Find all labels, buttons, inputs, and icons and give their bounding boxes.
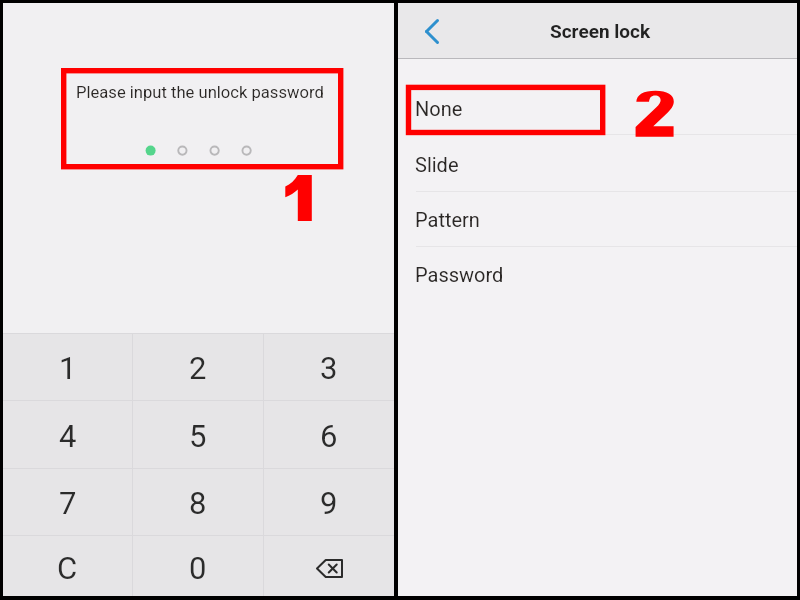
staticText: 7 [59,485,77,521]
button[interactable]: Password [398,247,797,303]
button[interactable]: Back [410,9,454,53]
staticText: None [415,97,463,120]
staticText: 9 [320,485,338,521]
button[interactable]: 9 [264,469,394,535]
button[interactable]: 2 [133,333,263,400]
button[interactable]: 0 [133,536,263,596]
button[interactable]: 4 [3,401,132,468]
staticText: 5 [189,418,207,454]
button[interactable]: 8 [133,469,263,535]
staticText: Please input the unlock password [76,83,324,102]
button[interactable]: 7 [3,469,132,535]
button[interactable]: Delete [264,536,394,596]
staticText: 4 [59,418,77,454]
staticText: C [57,550,78,586]
staticText: Screen lock [550,20,651,42]
staticText: 3 [320,350,338,386]
button[interactable]: 5 [133,401,263,468]
button[interactable]: C [3,536,132,596]
staticText: 6 [320,418,338,454]
button[interactable]: 6 [264,401,394,468]
button[interactable]: 3 [264,333,394,400]
button[interactable]: None [398,76,797,134]
staticText: Slide [415,153,459,176]
button[interactable]: Pattern [398,192,797,246]
staticText: 1 [59,350,77,386]
staticText: 0 [189,550,207,586]
other: Delete [316,559,343,578]
staticText: 8 [189,485,207,521]
staticText: Password [415,263,504,286]
button[interactable]: Slide [398,135,797,191]
button[interactable]: 1 [3,333,132,400]
staticText: 2 [189,350,207,386]
staticText: Pattern [415,208,480,231]
